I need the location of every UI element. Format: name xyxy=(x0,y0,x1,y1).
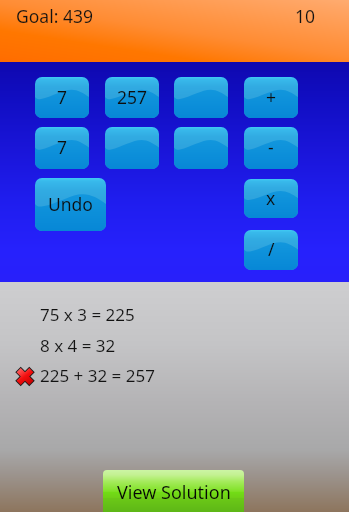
staticText: Goal: 439 xyxy=(16,4,93,28)
staticText: 75 x 3 = 225 xyxy=(40,303,135,326)
button[interactable]: View Solution xyxy=(103,470,244,512)
button[interactable]: blank tile xyxy=(174,77,228,118)
button[interactable]: multiply xyxy=(244,179,298,218)
staticText: 8 x 4 = 32 xyxy=(40,334,116,357)
staticText: / xyxy=(268,237,275,261)
button[interactable]: Undo xyxy=(35,178,106,231)
button[interactable]: blank tile xyxy=(174,127,228,169)
staticText: 225 + 32 = 257 xyxy=(40,364,155,387)
other: Incorrect xyxy=(16,368,34,385)
staticText: + xyxy=(266,85,277,109)
staticText: 7 xyxy=(57,85,68,109)
staticText: x xyxy=(266,186,276,210)
button[interactable]: blank tile xyxy=(105,127,159,169)
staticText: Undo xyxy=(48,192,93,216)
button[interactable]: 7 xyxy=(35,127,89,169)
button[interactable]: 257 xyxy=(105,77,159,118)
staticText: - xyxy=(268,135,274,159)
staticText: View Solution xyxy=(117,480,231,505)
button[interactable]: minus xyxy=(244,127,298,169)
button[interactable]: divide xyxy=(244,230,298,270)
staticText: 7 xyxy=(57,135,68,159)
staticText: 10 xyxy=(295,4,316,28)
button[interactable]: plus xyxy=(244,77,298,118)
button[interactable]: 7 xyxy=(35,77,89,118)
staticText: 257 xyxy=(117,85,148,109)
